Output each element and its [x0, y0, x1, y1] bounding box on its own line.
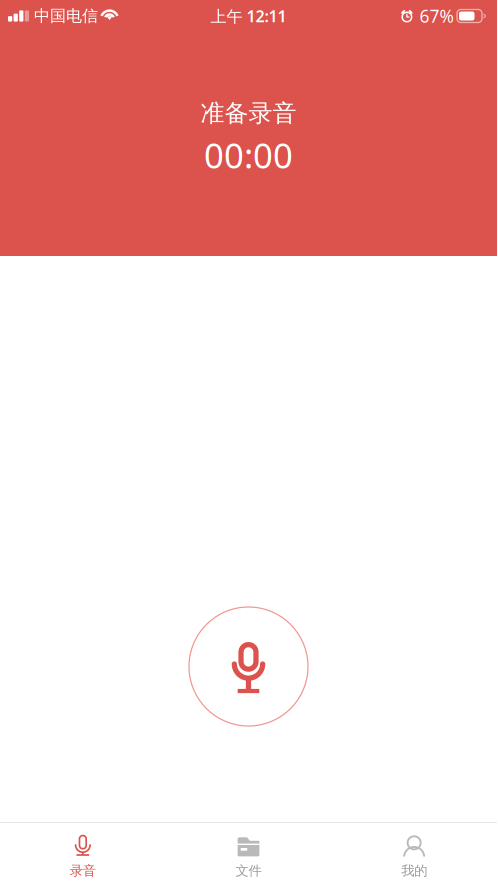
staticText: 我的 — [401, 862, 427, 879]
button[interactable]: 文件 — [166, 823, 331, 883]
button[interactable]: Record — [189, 607, 308, 726]
staticText: 录音 — [70, 862, 96, 879]
staticText: 准备录音 — [200, 98, 296, 128]
button[interactable]: 录音 — [0, 823, 166, 883]
staticText: 中国电信 — [34, 6, 98, 26]
staticText: 00:00 — [204, 132, 293, 178]
staticText: 67% — [419, 4, 453, 27]
staticText: 文件 — [235, 862, 261, 879]
staticText: 上午 12:11 — [210, 5, 286, 27]
button[interactable]: 我的 — [331, 823, 497, 883]
